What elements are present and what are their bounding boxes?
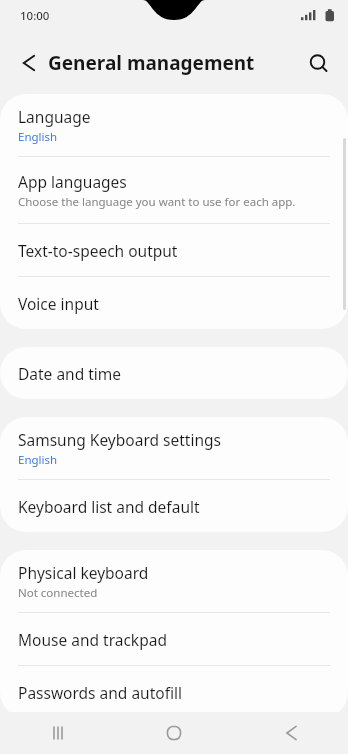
staticText: Physical keyboard [18, 562, 149, 583]
staticText: General management [48, 50, 255, 76]
staticText: Passwords and autofill [18, 682, 182, 703]
button[interactable]: Date and time [0, 347, 348, 399]
button[interactable]: Voice input [0, 277, 348, 329]
staticText: 10:00 [20, 8, 50, 24]
button[interactable]: Physical keyboard [0, 550, 348, 613]
button[interactable]: Passwords and autofill [0, 666, 348, 718]
staticText: Samsung Keyboard settings [18, 429, 221, 450]
staticText: Language [18, 106, 91, 127]
staticText: App languages [18, 171, 127, 192]
staticText: Keyboard list and default [18, 496, 200, 517]
button[interactable]: Text-to-speech output [0, 224, 348, 277]
button[interactable]: Recent apps [0, 712, 116, 754]
staticText: English [18, 452, 58, 468]
button[interactable]: Samsung Keyboard settings [0, 417, 348, 480]
button[interactable]: Navigate up [13, 48, 43, 78]
button[interactable]: App languages [0, 157, 348, 224]
button[interactable]: Search [302, 47, 334, 79]
staticText: Not connected [18, 585, 98, 601]
button[interactable]: Keyboard list and default [0, 480, 348, 532]
staticText: Voice input [18, 293, 99, 314]
staticText: Choose the language you want to use for … [18, 194, 296, 210]
staticText: Date and time [18, 363, 122, 384]
button[interactable]: Mouse and trackpad [0, 613, 348, 666]
staticText: English [18, 129, 58, 145]
button[interactable]: Home [116, 712, 232, 754]
staticText: Text-to-speech output [18, 240, 178, 261]
staticText: Mouse and trackpad [18, 629, 167, 650]
button[interactable]: Language [0, 94, 348, 157]
button[interactable]: Back [232, 712, 348, 754]
